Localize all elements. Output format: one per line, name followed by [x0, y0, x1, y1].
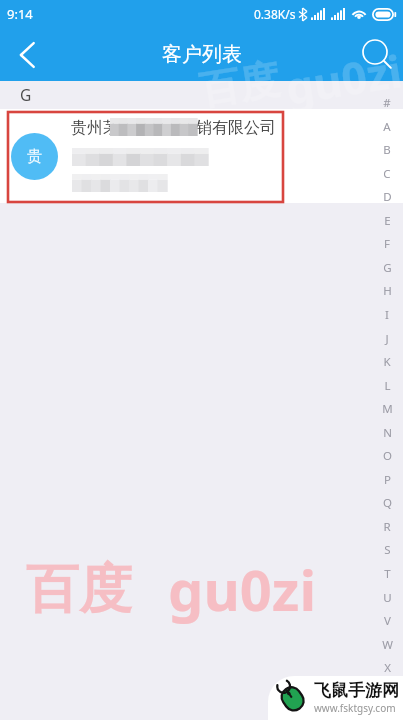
staticText: 贵州茅: [71, 118, 119, 138]
staticText: V: [384, 613, 391, 629]
staticText: 百度: [196, 54, 283, 116]
staticText: 飞鼠手游网: [314, 680, 399, 701]
staticText: X: [384, 660, 391, 676]
staticText: T: [384, 566, 391, 582]
staticText: J: [385, 331, 389, 347]
staticText: M: [382, 401, 393, 417]
staticText: gu0zi: [281, 40, 403, 118]
staticText: D: [383, 189, 392, 205]
button[interactable]: Search: [353, 30, 403, 80]
staticText: 0.38K/s: [254, 6, 296, 22]
button[interactable]: 贵: [0, 109, 403, 203]
staticText: www.fsktgsy.com: [314, 701, 396, 715]
staticText: R: [383, 519, 391, 535]
staticText: N: [383, 425, 392, 441]
staticText: P: [384, 472, 391, 488]
staticText: U: [383, 590, 392, 606]
button[interactable]: Alphabet index: [373, 92, 401, 692]
staticText: A: [383, 119, 391, 135]
staticText: F: [384, 236, 390, 252]
staticText: B: [383, 142, 391, 158]
staticText: #: [383, 95, 391, 111]
staticText: C: [383, 166, 391, 182]
staticText: G: [383, 260, 392, 276]
staticText: S: [384, 542, 391, 558]
staticText: Q: [383, 495, 392, 511]
staticText: gu0zi: [168, 551, 317, 627]
staticText: 销有限公司: [196, 118, 276, 138]
staticText: 客户列表: [162, 42, 242, 67]
staticText: W: [382, 637, 393, 653]
staticText: 贵: [27, 147, 42, 166]
staticText: G: [20, 84, 32, 105]
staticText: 百度: [26, 556, 132, 623]
button[interactable]: Back: [4, 32, 50, 78]
staticText: I: [385, 307, 389, 323]
staticText: E: [384, 213, 391, 229]
staticText: O: [383, 448, 392, 464]
staticText: H: [383, 283, 392, 299]
staticText: 9:14: [7, 5, 33, 23]
staticText: K: [383, 354, 391, 370]
staticText: L: [384, 378, 391, 394]
